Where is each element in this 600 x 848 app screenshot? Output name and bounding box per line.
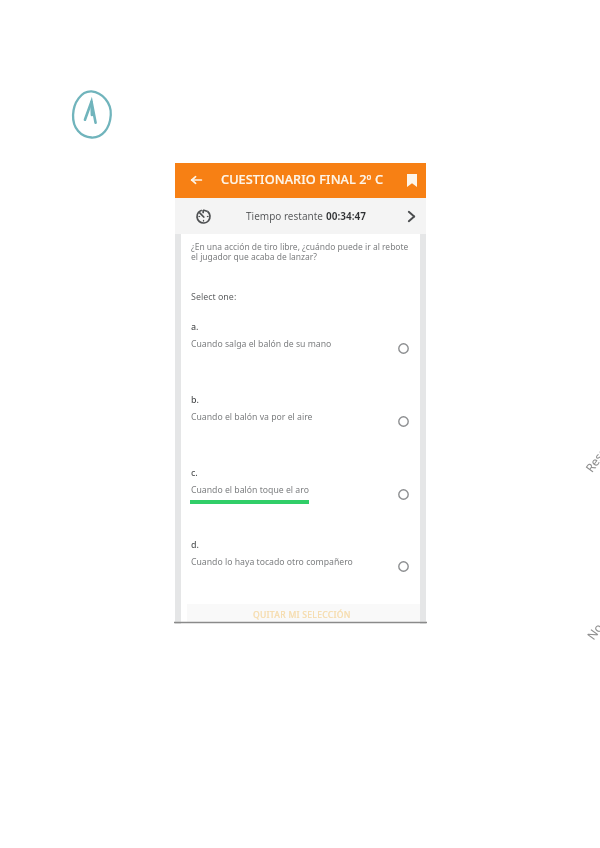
staticText: Reserv [581, 435, 600, 475]
button[interactable]: d. [181, 531, 420, 575]
staticText: Tiempo restante [246, 209, 326, 223]
button[interactable]: c. [181, 459, 420, 503]
staticText: c. [191, 466, 198, 478]
staticText: a. [191, 320, 199, 332]
staticText: Select one: [191, 290, 237, 302]
staticText: Cuando lo haya tocado otro compañero [191, 556, 353, 568]
button[interactable]: Next question [401, 198, 422, 234]
staticText: ¿En una acción de tiro libre, ¿cuándo pu… [191, 241, 409, 262]
staticText: Cuando salga el balón de su mano [191, 338, 332, 350]
button[interactable]: b. [181, 386, 420, 430]
button[interactable]: Bookmark [401, 163, 423, 197]
staticText: d. [191, 538, 199, 550]
staticText: b. [191, 393, 199, 405]
staticText: 00:34:47 [326, 209, 366, 223]
button[interactable]: a. [181, 313, 420, 357]
staticText: Cuando el balón va por el aire [191, 411, 313, 423]
staticText: CUESTIONARIO FINAL 2º C [221, 170, 384, 187]
button[interactable]: Back [184, 163, 208, 197]
staticText: No [583, 619, 600, 643]
staticText: Cuando el balón toque el aro [191, 484, 309, 496]
button[interactable]: CUESTIONARIO FINAL 2º C [221, 163, 384, 198]
button[interactable]: QUITAR MI SELECCIÓN [190, 606, 414, 624]
staticText: QUITAR MI SELECCIÓN [253, 609, 351, 621]
